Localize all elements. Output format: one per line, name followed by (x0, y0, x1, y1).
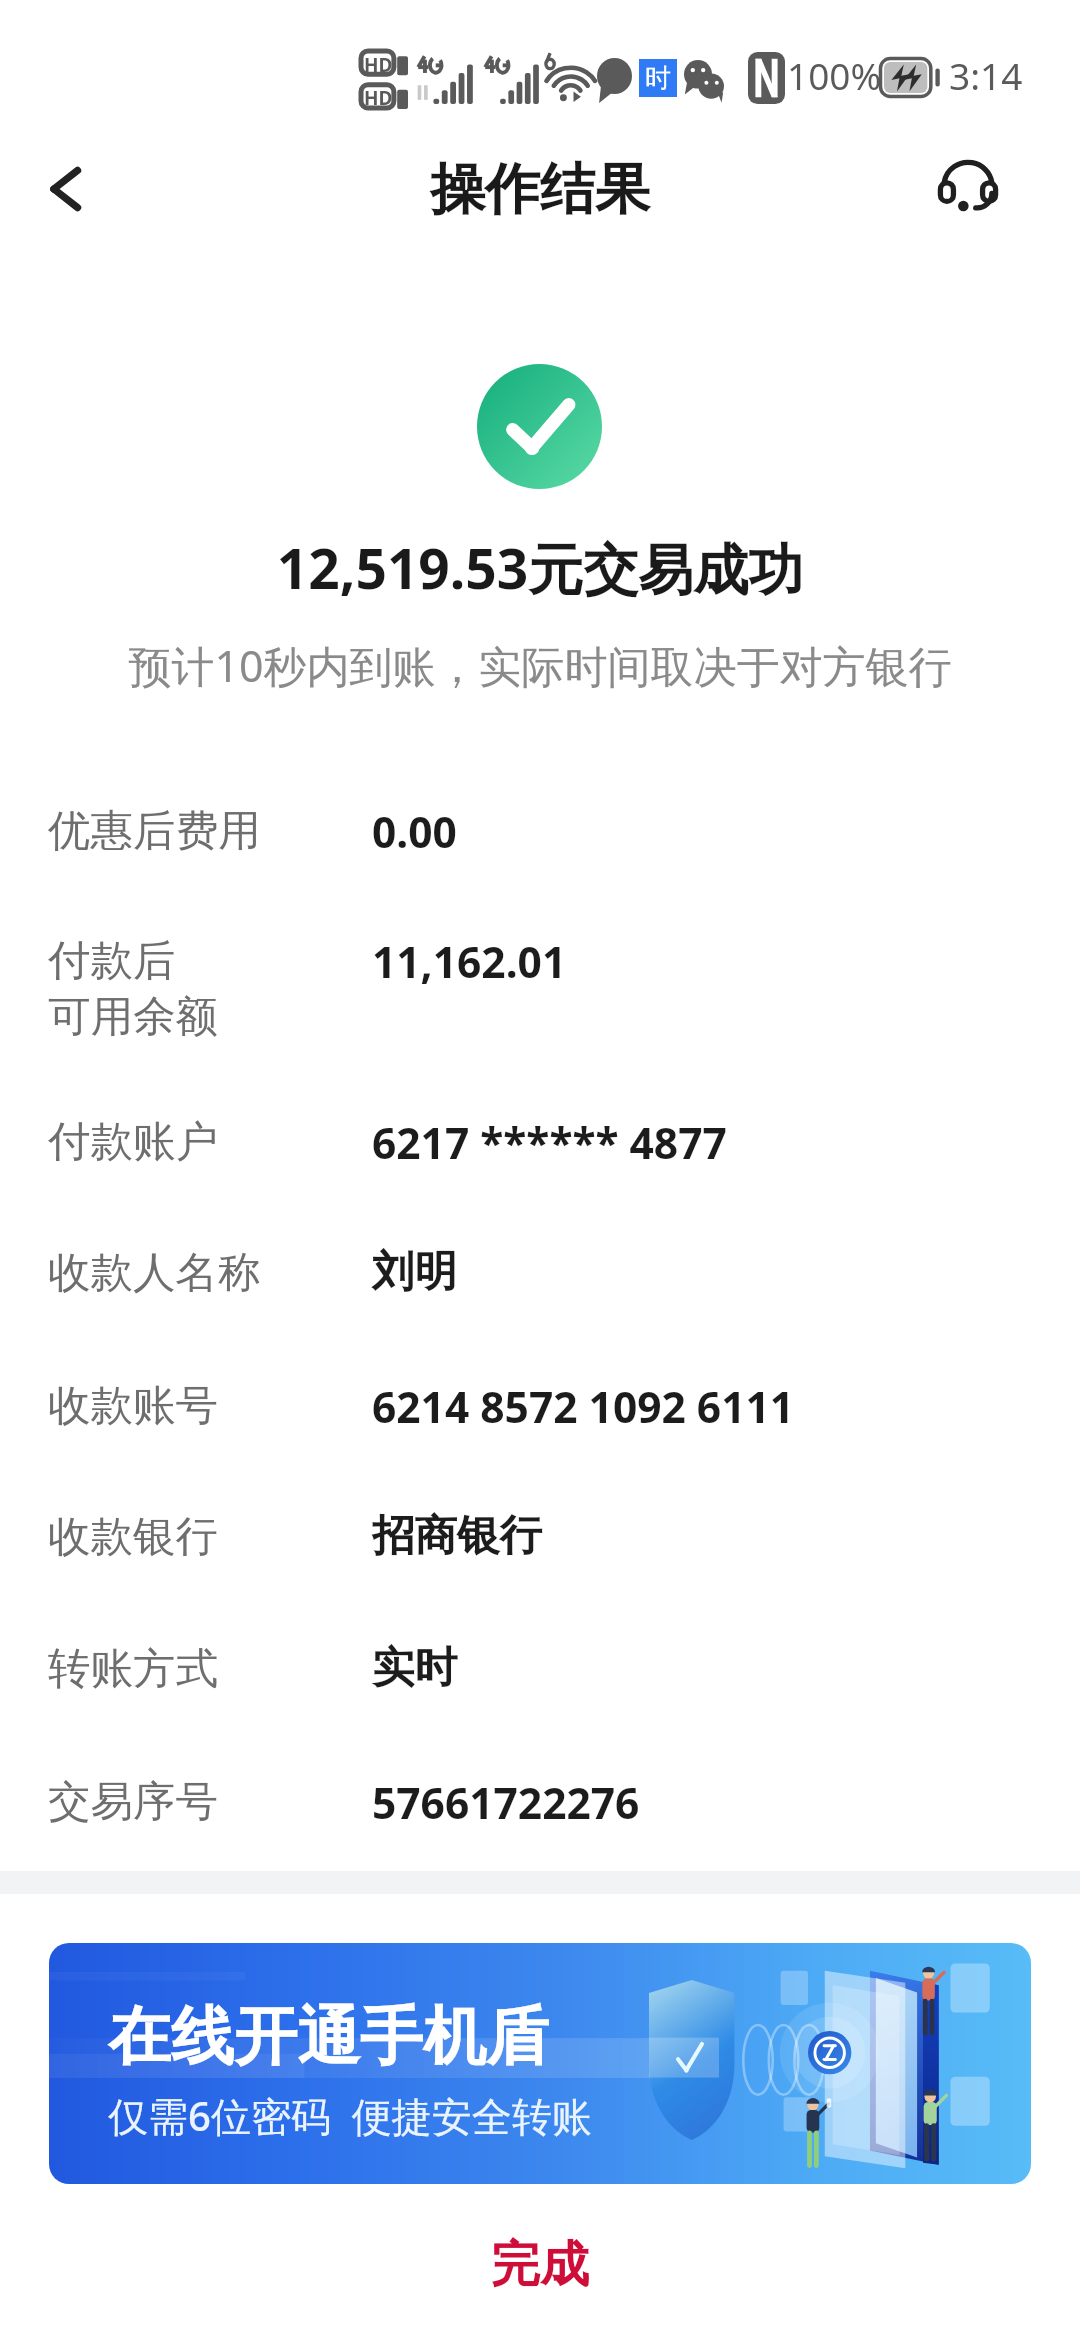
button[interactable]: Customer service (918, 130, 1018, 248)
staticText: 6214 8572 1092 6111 (372, 1378, 795, 1436)
staticText: 付款账户 (48, 1115, 218, 1169)
staticText: 优惠后费用 (48, 804, 261, 858)
staticText: 操作结果 (430, 155, 650, 224)
staticText: 付款后 (48, 934, 176, 988)
staticText: HD (364, 85, 393, 111)
staticText: 完成 (491, 2234, 589, 2296)
staticText: 在线开通手机盾 (108, 1997, 549, 2076)
button[interactable]: 在线开通手机盾 (49, 1943, 1031, 2184)
staticText: 57661722276 (372, 1774, 640, 1832)
staticText: 0.00 (372, 803, 457, 861)
staticText: 可用余额 (48, 990, 218, 1044)
staticText: 时 (645, 62, 671, 95)
staticText: 实时 (372, 1641, 457, 1695)
staticText: 招商银行 (372, 1509, 542, 1563)
staticText: 100% (787, 50, 882, 100)
staticText: 11,162.01 (372, 933, 567, 991)
staticText: 12,519.53元交易成功 (0, 530, 1080, 605)
staticText: 收款人名称 (48, 1246, 261, 1300)
staticText: 预计10秒内到账，实际时间取决于对方银行 (0, 636, 1080, 695)
staticText: 刘明 (372, 1245, 457, 1299)
staticText: 3:14 (949, 50, 1023, 100)
staticText: 交易序号 (48, 1775, 218, 1829)
staticText: 6217 ****** 4877 (372, 1114, 727, 1172)
staticText: 转账方式 (48, 1642, 218, 1696)
staticText: 仅需6位密码 便捷安全转账 (108, 2088, 592, 2143)
staticText: 收款账号 (48, 1379, 218, 1433)
staticText: HD (364, 52, 393, 78)
button[interactable]: Back (22, 130, 110, 248)
button[interactable]: 完成 (0, 2234, 1080, 2340)
staticText: 收款银行 (48, 1510, 218, 1564)
